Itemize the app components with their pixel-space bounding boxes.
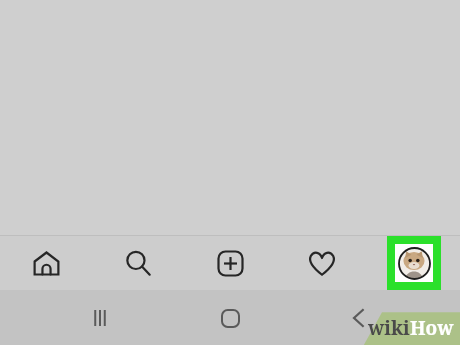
button[interactable]: Recent apps (80, 303, 120, 333)
button[interactable]: Home (210, 303, 250, 333)
staticText: wiki (368, 315, 410, 341)
button[interactable]: Profile (387, 236, 441, 290)
staticText: How (410, 315, 454, 341)
button[interactable]: Back (338, 303, 378, 333)
button[interactable]: Activity (299, 240, 345, 286)
button[interactable]: Search (115, 240, 161, 286)
button[interactable]: Home feed (23, 240, 69, 286)
button[interactable]: Create new post (207, 240, 253, 286)
